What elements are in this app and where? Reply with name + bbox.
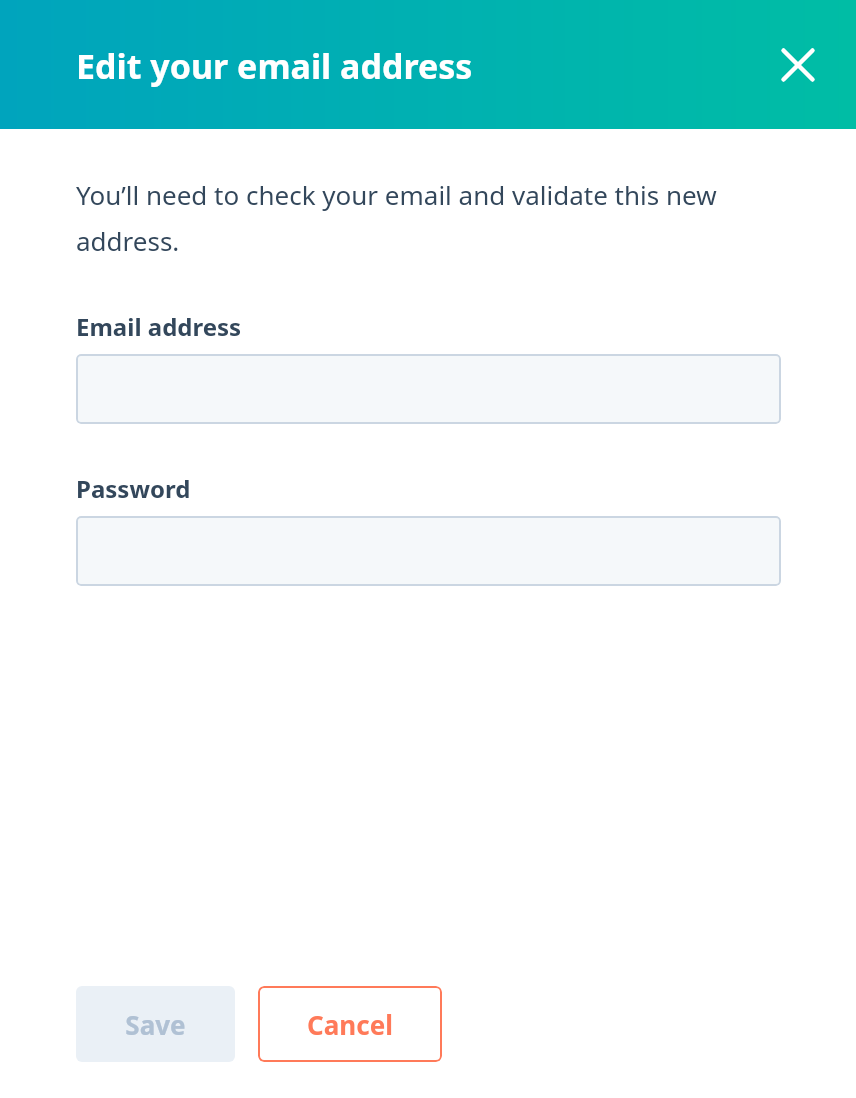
button[interactable] (76, 354, 781, 424)
staticText: Email address (76, 310, 242, 343)
button[interactable]: Cancel (258, 986, 442, 1062)
staticText: Password (76, 472, 191, 505)
staticText: Cancel (307, 1007, 393, 1042)
staticText: Edit your email address (76, 43, 473, 89)
button[interactable]: Save (76, 986, 235, 1062)
button[interactable] (76, 516, 781, 586)
button[interactable]: Close (768, 35, 828, 95)
staticText: You’ll need to check your email and vali… (76, 177, 781, 259)
staticText: Save (125, 1007, 186, 1042)
